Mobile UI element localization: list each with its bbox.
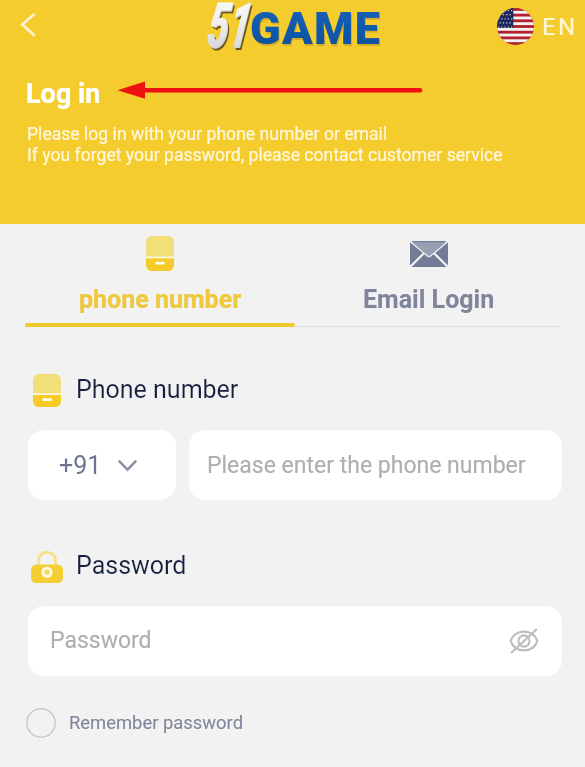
- staticText: Email Login: [363, 285, 495, 314]
- staticText: Password: [50, 627, 152, 654]
- staticText: +91: [59, 451, 102, 480]
- button[interactable]: +91: [28, 430, 176, 500]
- button[interactable]: EN: [497, 8, 578, 45]
- button[interactable]: Email Login: [295, 228, 562, 326]
- button[interactable]: Password: [28, 606, 562, 676]
- staticText: Please log in with your phone number or …: [27, 124, 388, 145]
- staticText: Password: [76, 551, 187, 580]
- staticText: GAME: [250, 2, 382, 55]
- staticText: If you forget your password, please cont…: [27, 145, 503, 166]
- staticText: Phone number: [76, 375, 239, 404]
- button[interactable]: Back: [6, 3, 50, 47]
- staticText: EN: [542, 13, 578, 41]
- button[interactable]: Show password: [504, 621, 544, 661]
- staticText: Remember password: [69, 712, 244, 734]
- button[interactable]: Please enter the phone number: [189, 430, 562, 500]
- staticText: phone number: [79, 285, 242, 314]
- button[interactable]: Remember password: [26, 708, 244, 738]
- staticText: Log in: [26, 78, 101, 110]
- staticText: Please enter the phone number: [207, 452, 526, 479]
- button[interactable]: phone number: [25, 228, 295, 326]
- staticText: 51: [207, 0, 249, 66]
- staticText: 51: [205, 0, 247, 63]
- staticText: GAME: [251, 4, 383, 57]
- staticText: 51: [206, 0, 248, 64]
